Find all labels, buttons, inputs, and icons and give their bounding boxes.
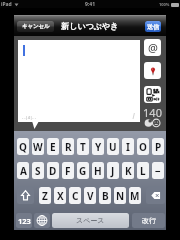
staticText: E — [50, 140, 56, 154]
button[interactable]: Q — [17, 138, 29, 155]
staticText: iPad — [1, 1, 12, 8]
staticText: L — [140, 164, 146, 178]
staticText: 140 — [143, 105, 162, 120]
button[interactable]: E — [47, 138, 59, 155]
staticText: - -|4|- - — [22, 115, 36, 120]
button[interactable]: 送信 — [145, 21, 161, 32]
button[interactable]: I — [122, 138, 134, 155]
button[interactable]: R — [62, 138, 74, 155]
button[interactable]: A — [17, 162, 29, 179]
staticText: Z — [42, 189, 48, 203]
button[interactable]: U — [107, 138, 119, 155]
button[interactable]: Y — [92, 138, 104, 155]
staticText: M — [130, 189, 140, 203]
button[interactable]: 改行 — [132, 213, 165, 228]
staticText: 123 — [18, 216, 31, 226]
button[interactable]: W — [32, 138, 44, 155]
button[interactable]: スペース — [52, 213, 129, 228]
button[interactable]: L — [137, 162, 149, 179]
staticText: − — [155, 164, 161, 178]
staticText: J — [111, 164, 115, 178]
button[interactable]: 123 — [16, 213, 32, 228]
button[interactable]: Attach media — [144, 86, 161, 103]
staticText: 送信 — [147, 23, 159, 31]
staticText: スペース — [76, 216, 105, 225]
staticText: H — [94, 164, 102, 178]
staticText: Y — [95, 140, 102, 154]
button[interactable]: Z — [39, 187, 51, 204]
button[interactable]: Change keyboard — [34, 213, 50, 228]
button[interactable]: K — [122, 162, 134, 179]
button[interactable]: Backspace — [146, 187, 165, 204]
staticText: G — [79, 164, 87, 178]
staticText: F — [65, 164, 71, 178]
button[interactable]: H — [92, 162, 104, 179]
staticText: N — [116, 189, 125, 203]
button[interactable]: C — [69, 187, 81, 204]
button[interactable]: B — [99, 187, 111, 204]
button[interactable]: X — [54, 187, 66, 204]
staticText: X — [57, 189, 64, 203]
button[interactable]: F — [62, 162, 74, 179]
button[interactable]: J — [107, 162, 119, 179]
button[interactable]: Mention — [144, 39, 161, 56]
button[interactable]: D — [47, 162, 59, 179]
staticText: C — [72, 189, 79, 203]
staticText: 新しいつぶやき — [61, 21, 119, 31]
button[interactable]: Shift — [17, 187, 34, 204]
button[interactable]: M — [129, 187, 141, 204]
button[interactable]: P — [152, 138, 164, 155]
button[interactable]: G — [77, 162, 89, 179]
staticText: 改行 — [142, 216, 156, 225]
staticText: 100% — [159, 2, 170, 7]
button[interactable]: T — [77, 138, 89, 155]
staticText: S — [35, 164, 41, 178]
staticText: U — [109, 140, 117, 154]
staticText: T — [80, 140, 86, 154]
button[interactable]: Emoji — [144, 118, 161, 127]
staticText: V — [87, 189, 94, 203]
button[interactable]: − — [152, 162, 164, 179]
staticText: Q — [19, 140, 27, 154]
staticText: @ — [148, 40, 158, 55]
button[interactable]: O — [137, 138, 149, 155]
button[interactable]: キャンセル — [17, 21, 54, 32]
staticText: A — [20, 164, 27, 178]
staticText: 9:41 — [85, 1, 95, 8]
staticText: W — [33, 140, 43, 154]
staticText: D — [49, 164, 57, 178]
staticText: O — [139, 140, 147, 154]
button[interactable]: V — [84, 187, 96, 204]
button[interactable]: S — [32, 162, 44, 179]
staticText: B — [102, 189, 109, 203]
staticText: キャンセル — [22, 23, 50, 30]
button[interactable]: N — [114, 187, 126, 204]
staticText: K — [125, 164, 132, 178]
button[interactable]: Location — [144, 62, 161, 79]
staticText: R — [65, 140, 72, 154]
staticText: I — [126, 140, 130, 154]
staticText: P — [155, 140, 162, 154]
